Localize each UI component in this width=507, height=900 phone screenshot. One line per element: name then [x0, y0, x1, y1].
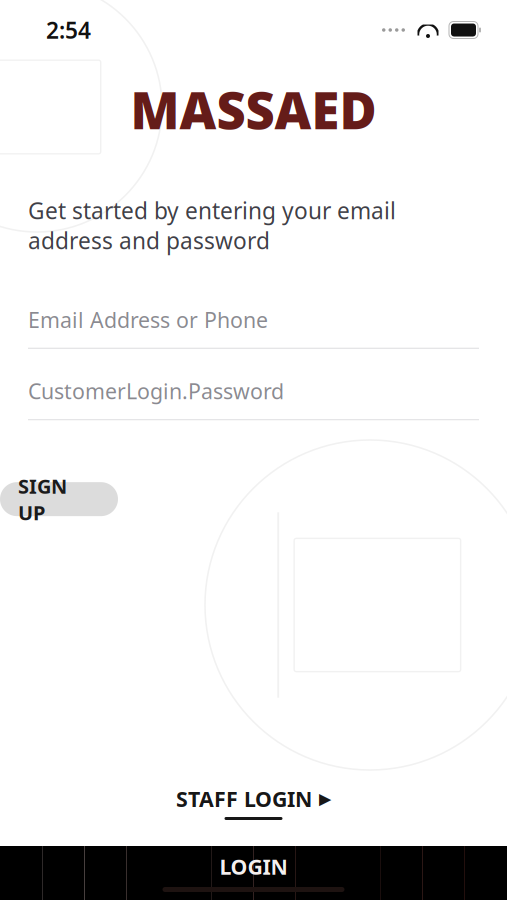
- button[interactable]: LOGIN: [0, 846, 507, 900]
- staticText: MASSAED: [130, 76, 376, 143]
- button[interactable]: CustomerLogin.Password: [0, 377, 507, 420]
- button[interactable]: SIGN UP: [0, 482, 118, 516]
- staticText: STAFF LOGIN: [176, 785, 312, 813]
- staticText: Get started by entering your email addre…: [28, 195, 396, 255]
- staticText: SIGN UP: [18, 473, 67, 526]
- button[interactable]: STAFF LOGIN: [152, 779, 355, 826]
- button[interactable]: Email Address or Phone: [0, 305, 507, 349]
- staticText: 2:54: [46, 15, 91, 45]
- staticText: Email Address or Phone: [28, 305, 268, 334]
- staticText: CustomerLogin.Password: [28, 377, 284, 405]
- staticText: LOGIN: [219, 852, 287, 881]
- staticText: ▶: [319, 790, 331, 808]
